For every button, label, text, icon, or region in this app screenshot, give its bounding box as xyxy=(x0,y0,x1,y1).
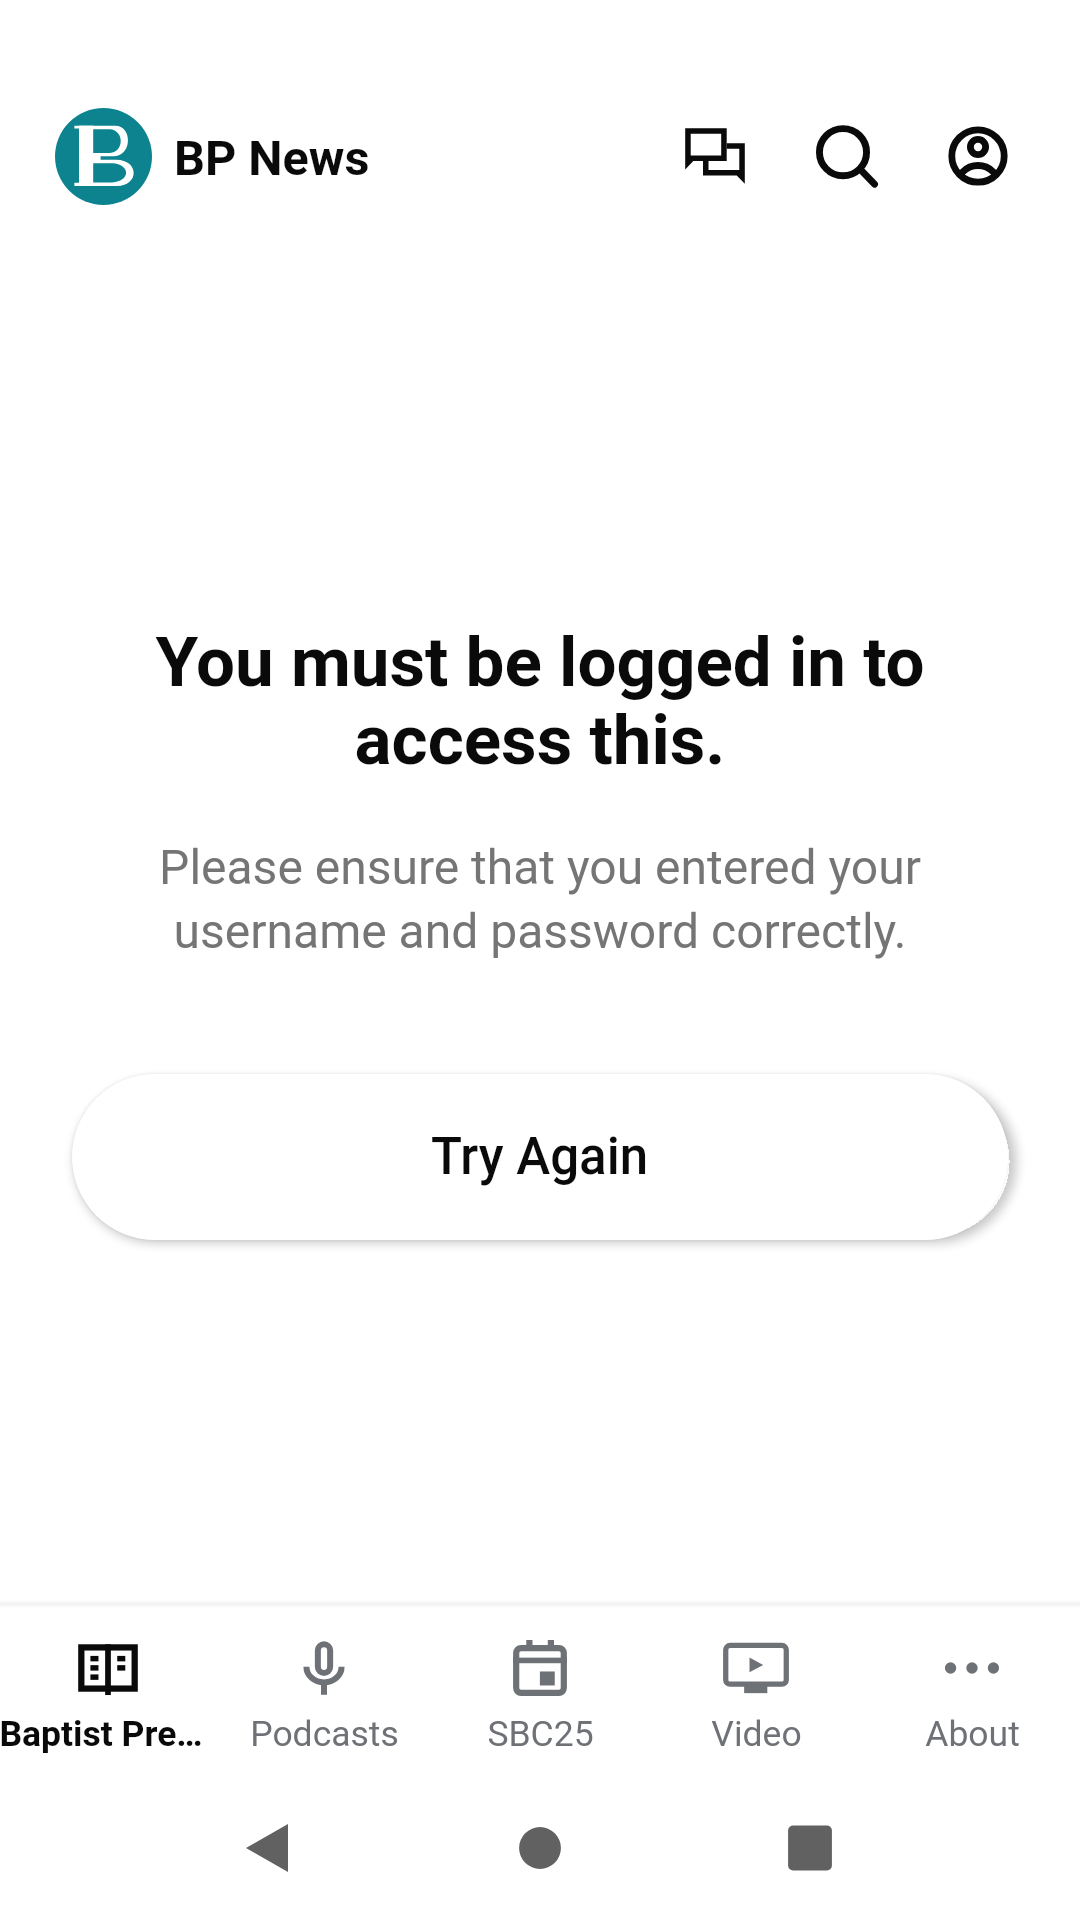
button[interactable]: Account xyxy=(929,107,1027,205)
button[interactable]: Back xyxy=(227,1808,307,1888)
button[interactable]: Home xyxy=(500,1808,580,1888)
staticText: Podcasts xyxy=(250,1713,399,1755)
staticText: Please ensure that you entered your user… xyxy=(72,839,1008,960)
button[interactable]: About xyxy=(864,1608,1080,1786)
staticText: BP News xyxy=(174,130,370,187)
staticText: You must be logged in to access this. xyxy=(72,622,1008,781)
button[interactable]: SBC25 xyxy=(432,1608,648,1786)
staticText: Try Again xyxy=(431,1127,649,1187)
button[interactable]: Recents xyxy=(770,1808,850,1888)
staticText: SBC25 xyxy=(487,1713,594,1755)
staticText: About xyxy=(925,1713,1020,1755)
button[interactable]: BP News logo xyxy=(55,108,152,205)
button[interactable]: Baptist Pre… xyxy=(0,1608,216,1786)
button[interactable]: Video xyxy=(648,1608,864,1786)
button[interactable]: Podcasts xyxy=(216,1608,432,1786)
button[interactable]: Messages xyxy=(666,107,764,205)
staticText: Baptist Pre… xyxy=(0,1713,203,1755)
button[interactable]: Try Again xyxy=(72,1074,1008,1240)
staticText: Video xyxy=(711,1713,802,1755)
button[interactable]: Search xyxy=(794,107,892,205)
